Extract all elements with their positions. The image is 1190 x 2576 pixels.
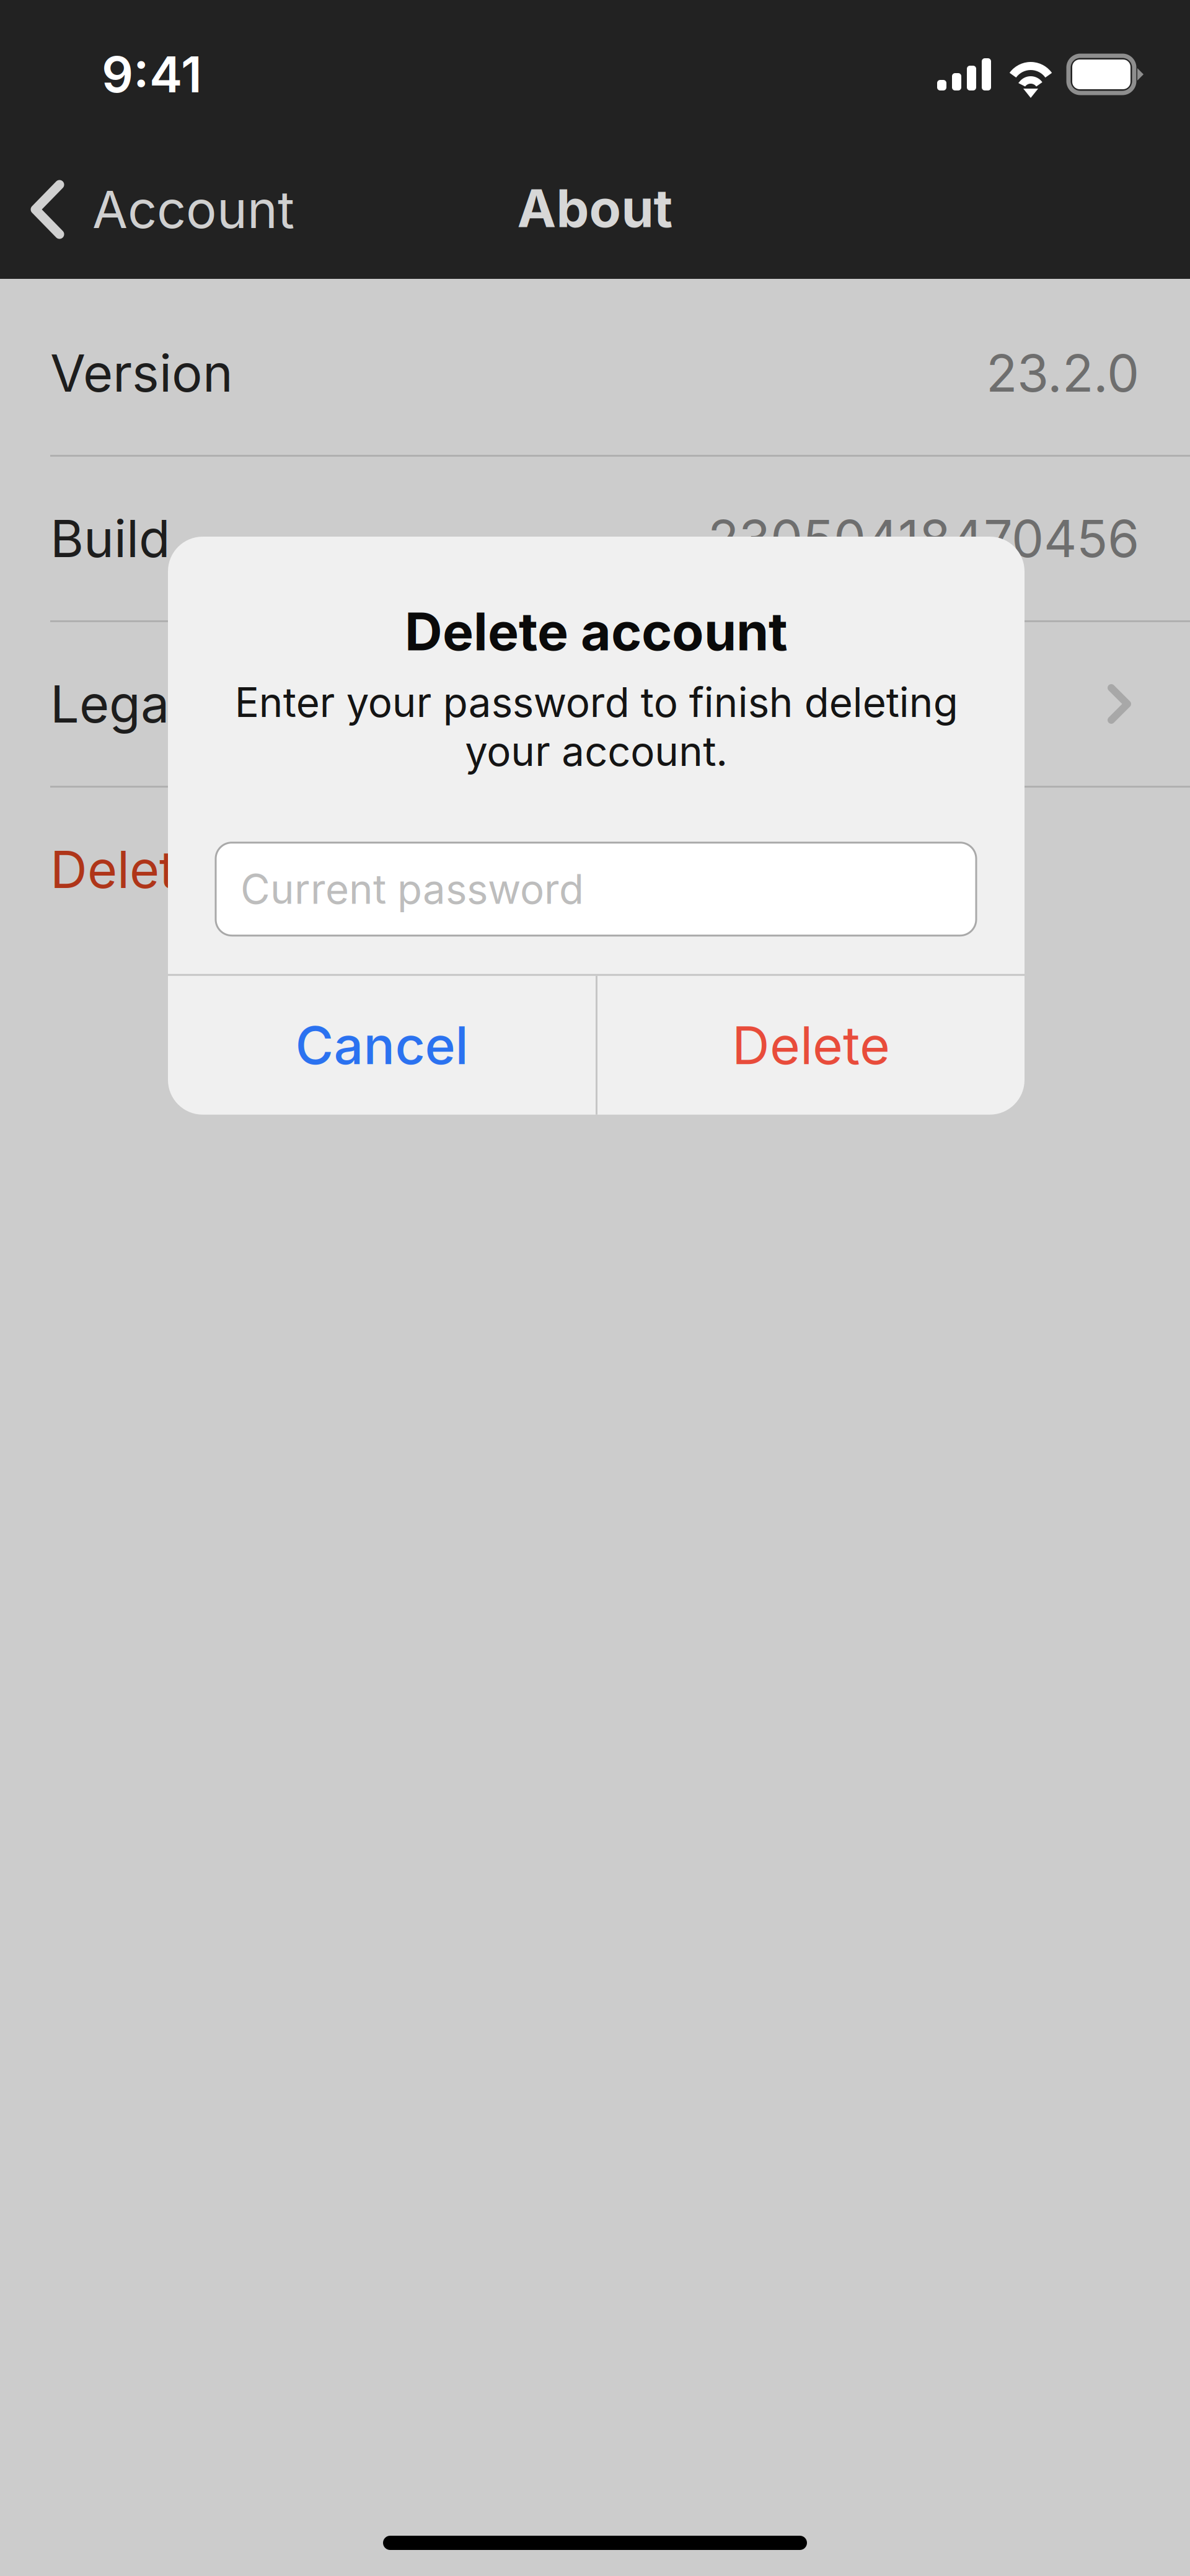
staticText: Account bbox=[92, 178, 294, 240]
staticText: Cancel bbox=[295, 1014, 468, 1077]
staticText: Version bbox=[50, 342, 233, 404]
staticText: Delete account bbox=[50, 838, 415, 900]
button[interactable]: Cancel bbox=[168, 976, 596, 1115]
staticText: About bbox=[517, 177, 673, 240]
staticText: 9:41 bbox=[102, 44, 202, 104]
button[interactable]: Current password bbox=[216, 843, 976, 936]
button[interactable]: Delete account bbox=[0, 788, 1190, 951]
staticText: Delete bbox=[732, 1014, 890, 1077]
staticText: Enter your password to finish deleting y… bbox=[235, 678, 958, 776]
staticText: Build bbox=[50, 508, 170, 569]
button[interactable]: Legal bbox=[0, 622, 1190, 786]
button[interactable]: Account bbox=[0, 158, 311, 270]
staticText: Legal bbox=[50, 673, 182, 735]
staticText: Current password bbox=[240, 865, 584, 914]
staticText: 23.2.0 bbox=[986, 342, 1139, 404]
button[interactable]: Delete bbox=[597, 976, 1025, 1115]
staticText: 23050418470456 bbox=[708, 508, 1139, 569]
staticText: Delete account bbox=[405, 600, 788, 663]
